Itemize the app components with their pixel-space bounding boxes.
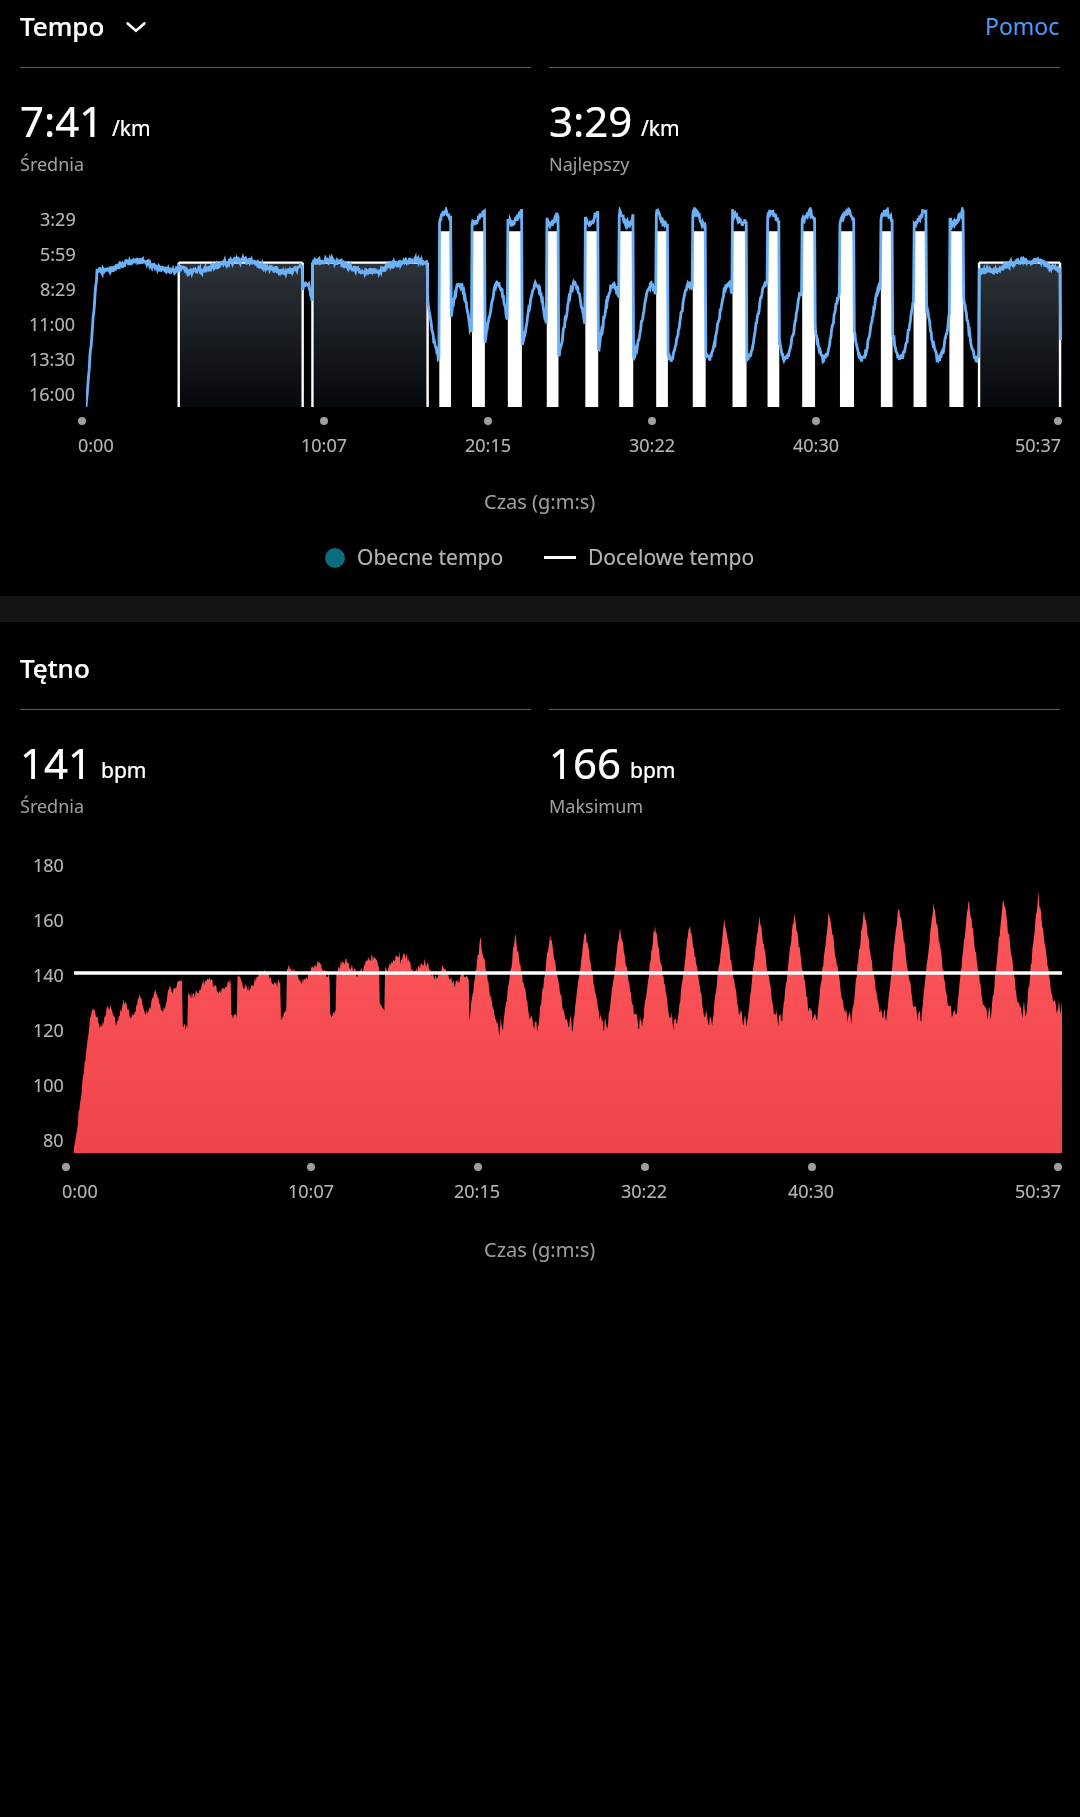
staticText: 166	[549, 734, 622, 791]
button[interactable]: Tempo	[20, 8, 149, 43]
button[interactable]: 141	[20, 709, 531, 819]
staticText: 5:59	[40, 242, 76, 267]
staticText: 40:30	[793, 433, 840, 458]
staticText: 10:07	[301, 433, 348, 458]
other: Zmień wykres	[123, 13, 149, 39]
button[interactable]: Pomoc	[985, 10, 1060, 41]
staticText: Pomoc	[985, 10, 1060, 41]
staticText: 7:41	[20, 92, 104, 149]
staticText: Obecne tempo	[357, 543, 504, 572]
staticText: Tętno	[20, 650, 90, 685]
staticText: Czas (g:m:s)	[484, 488, 596, 515]
staticText: Maksimum	[549, 794, 644, 819]
staticText: 30:22	[621, 1179, 668, 1204]
staticText: 0:00	[62, 1179, 98, 1204]
staticText: 50:37	[1015, 1179, 1062, 1204]
button[interactable]: 3:29	[549, 67, 1060, 177]
staticText: 20:15	[454, 1179, 501, 1204]
staticText: 8:29	[40, 277, 76, 302]
staticText: 3:29	[549, 92, 633, 149]
staticText: 13:30	[29, 347, 76, 372]
staticText: 30:22	[629, 433, 676, 458]
staticText: 3:29	[40, 207, 76, 232]
staticText: 11:00	[29, 312, 76, 337]
staticText: 141	[20, 734, 93, 791]
staticText: Czas (g:m:s)	[484, 1236, 596, 1263]
staticText: 100	[33, 1073, 64, 1098]
staticText: 50:37	[1015, 433, 1062, 458]
button[interactable]: 7:41	[20, 67, 531, 177]
staticText: bpm	[630, 756, 676, 785]
staticText: 160	[33, 908, 64, 933]
staticText: 180	[33, 853, 64, 878]
staticText: 10:07	[288, 1179, 335, 1204]
button[interactable]: 166	[549, 709, 1060, 819]
staticText: Średnia	[20, 152, 85, 177]
staticText: Najlepszy	[549, 152, 630, 177]
staticText: Średnia	[20, 794, 85, 819]
staticText: /km	[112, 114, 151, 143]
staticText: 20:15	[465, 433, 512, 458]
staticText: /km	[641, 114, 680, 143]
staticText: 80	[43, 1128, 64, 1153]
staticText: 0:00	[78, 433, 114, 458]
staticText: 40:30	[788, 1179, 835, 1204]
staticText: Docelowe tempo	[588, 543, 755, 572]
staticText: Tempo	[20, 8, 105, 43]
staticText: bpm	[101, 756, 147, 785]
staticText: 16:00	[29, 382, 76, 407]
staticText: 140	[33, 963, 64, 988]
staticText: 120	[33, 1018, 64, 1043]
